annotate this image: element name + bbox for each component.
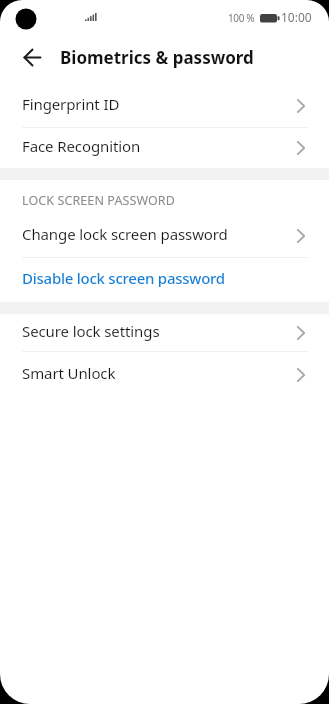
button[interactable]: Change lock screen password bbox=[0, 214, 329, 257]
button[interactable]: Smart Unlock bbox=[0, 352, 329, 397]
staticText: LOCK SCREEN PASSWORD bbox=[22, 192, 175, 209]
button[interactable]: Disable lock screen password bbox=[0, 258, 329, 302]
staticText: Fingerprint ID bbox=[22, 94, 120, 114]
staticText: Face Recognition bbox=[22, 136, 141, 156]
staticText: 10:00 bbox=[281, 9, 312, 25]
button[interactable]: Face Recognition bbox=[0, 128, 329, 168]
staticText: Secure lock settings bbox=[22, 321, 160, 341]
staticText: Disable lock screen password bbox=[22, 268, 225, 288]
button[interactable]: Fingerprint ID bbox=[0, 84, 329, 127]
button[interactable]: Secure lock settings bbox=[0, 314, 329, 351]
staticText: 100 % bbox=[228, 11, 255, 25]
button[interactable] bbox=[16, 41, 48, 73]
staticText: Change lock screen password bbox=[22, 224, 228, 244]
staticText: Biometrics & password bbox=[60, 46, 254, 69]
staticText: Smart Unlock bbox=[22, 363, 116, 383]
